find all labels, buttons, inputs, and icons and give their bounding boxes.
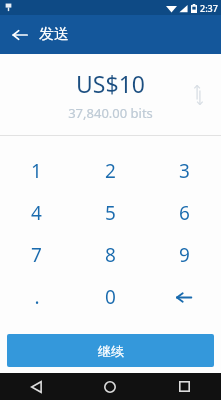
- staticText: 继续: [98, 343, 124, 359]
- button[interactable]: 0: [73, 276, 147, 318]
- button[interactable]: 3: [147, 150, 221, 192]
- staticText: 2:37: [200, 2, 218, 14]
- staticText: 6: [179, 200, 190, 226]
- button[interactable]: 2: [73, 150, 147, 192]
- staticText: 4: [31, 200, 42, 226]
- staticText: 8: [105, 242, 116, 268]
- button[interactable]: .: [0, 276, 73, 318]
- button[interactable]: Backspace: [147, 276, 221, 318]
- staticText: .: [34, 284, 40, 310]
- staticText: 9: [179, 242, 190, 268]
- button[interactable]: Home: [73, 373, 147, 400]
- staticText: 2: [105, 158, 116, 184]
- staticText: 发送: [39, 25, 69, 44]
- button[interactable]: 9: [147, 234, 221, 276]
- button[interactable]: 1: [0, 150, 73, 192]
- button[interactable]: 8: [73, 234, 147, 276]
- button[interactable]: Recent apps: [147, 373, 221, 400]
- staticText: 3: [179, 158, 190, 184]
- button[interactable]: Back: [0, 15, 39, 54]
- button[interactable]: 6: [147, 192, 221, 234]
- button[interactable]: 4: [0, 192, 73, 234]
- button[interactable]: 7: [0, 234, 73, 276]
- button[interactable]: 继续: [7, 334, 214, 367]
- staticText: US$10: [76, 68, 145, 99]
- staticText: 1: [31, 158, 42, 184]
- button[interactable]: 5: [73, 192, 147, 234]
- staticText: 0: [105, 284, 116, 310]
- staticText: 7: [31, 242, 42, 268]
- button[interactable]: Swap currency: [183, 80, 213, 110]
- staticText: 37,840.00 bits: [68, 104, 153, 122]
- button[interactable]: Back: [0, 373, 73, 400]
- staticText: 5: [105, 200, 116, 226]
